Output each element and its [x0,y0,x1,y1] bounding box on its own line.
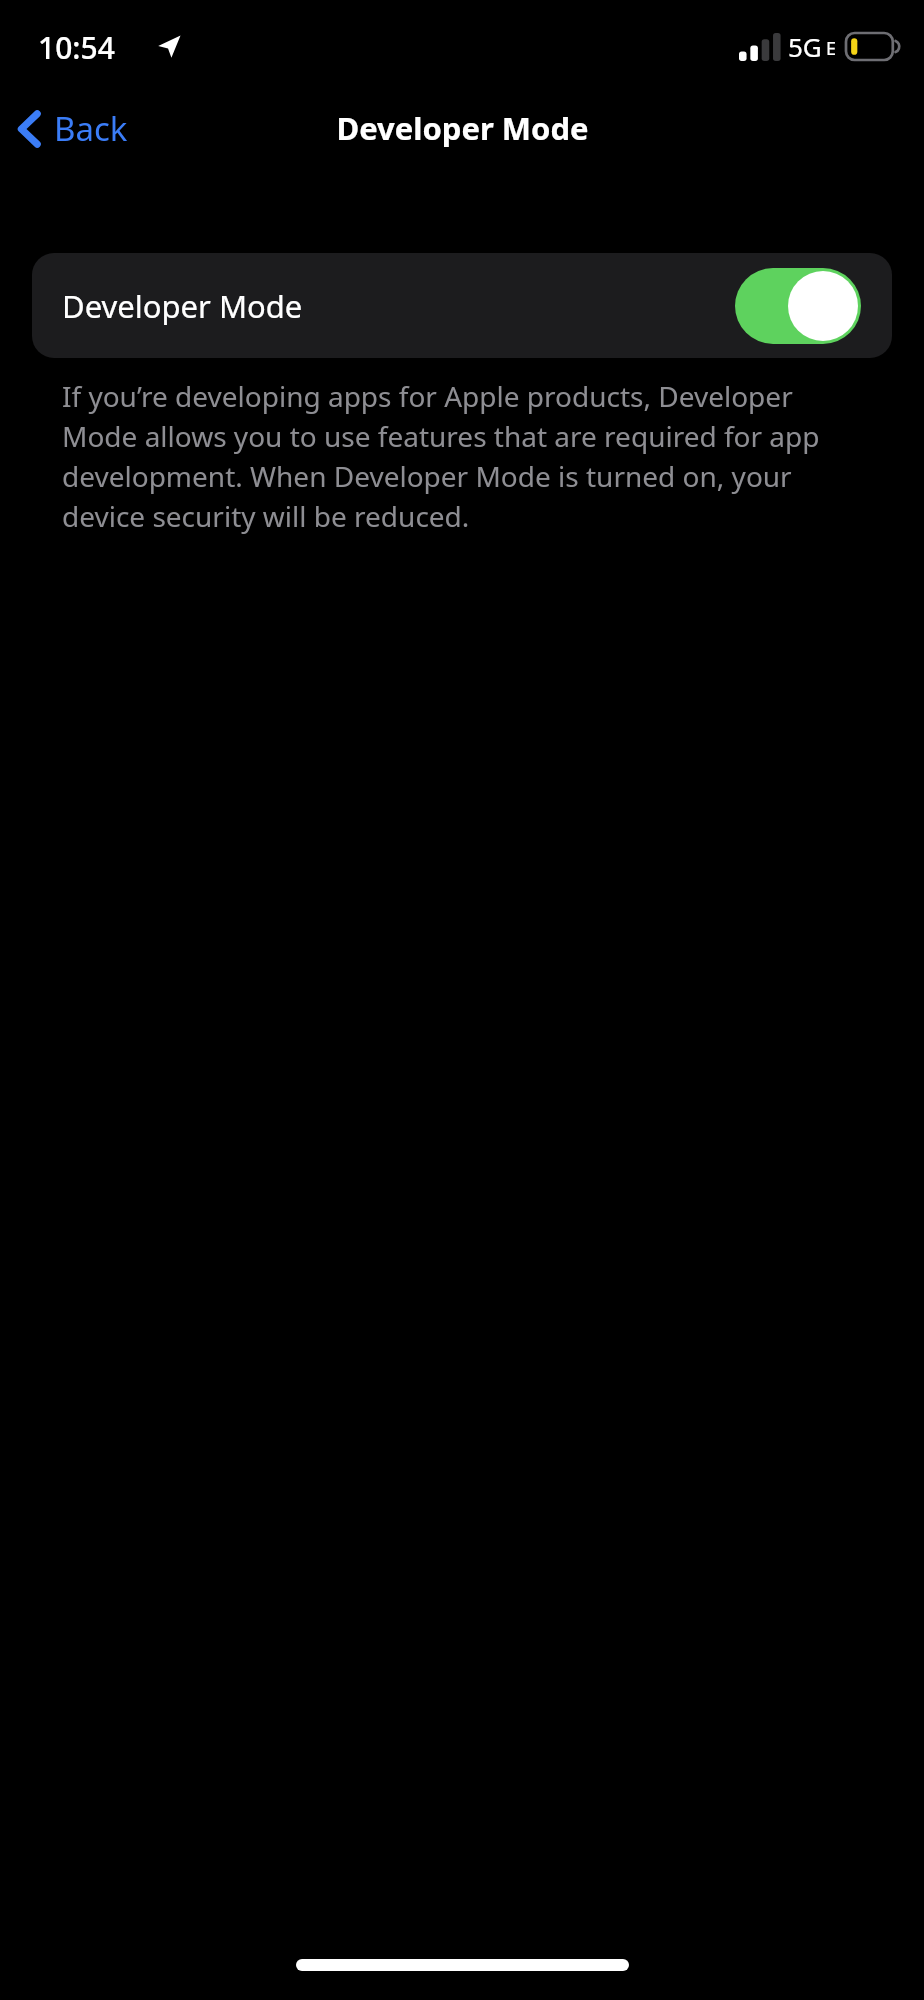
staticText: E [826,36,837,61]
staticText: 5G [788,29,822,64]
button[interactable]: Developer Mode toggle, on [735,268,861,344]
staticText: If you’re developing apps for Apple prod… [62,377,874,536]
staticText: Developer Mode [336,107,589,149]
staticText: 10:54 [38,27,115,68]
staticText: Back [54,106,128,151]
button[interactable]: Developer Mode [32,253,892,358]
button[interactable]: Back [0,100,144,157]
staticText: Developer Mode [62,285,303,327]
